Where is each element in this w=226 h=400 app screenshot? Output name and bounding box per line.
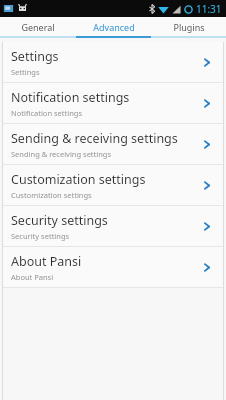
staticText: Settings: [11, 67, 40, 77]
staticText: Notification settings: [11, 108, 82, 118]
staticText: Advanced: [93, 21, 135, 33]
other: Open About Pansi: [198, 258, 216, 276]
other: Open Customization settings: [198, 176, 216, 194]
button[interactable]: General: [0, 17, 76, 36]
button[interactable]: Settings: [2, 42, 224, 82]
button[interactable]: Security settings: [2, 206, 224, 246]
staticText: 11:31: [196, 2, 222, 16]
staticText: Settings: [11, 48, 59, 65]
staticText: Security settings: [11, 231, 70, 241]
staticText: About Pansi: [11, 272, 54, 282]
other: Open Settings: [198, 53, 216, 71]
button[interactable]: Customization settings: [2, 165, 224, 205]
staticText: Sending & receiving settings: [11, 149, 112, 159]
other: Open Notification settings: [198, 94, 216, 112]
button[interactable]: Sending & receiving settings: [2, 124, 224, 164]
button[interactable]: Plugins: [151, 17, 226, 36]
other: Open Sending & receiving settings: [198, 135, 216, 153]
staticText: Plugins: [173, 21, 205, 33]
button[interactable]: About Pansi: [2, 247, 224, 287]
button[interactable]: Advanced: [76, 17, 151, 36]
staticText: Sending & receiving settings: [11, 130, 178, 147]
staticText: Customization settings: [11, 190, 92, 200]
other: Open Security settings: [198, 217, 216, 235]
staticText: Security settings: [11, 212, 108, 229]
staticText: Notification settings: [11, 89, 130, 106]
staticText: Customization settings: [11, 171, 146, 188]
staticText: General: [21, 21, 55, 33]
staticText: About Pansi: [11, 253, 82, 270]
button[interactable]: Notification settings: [2, 83, 224, 123]
